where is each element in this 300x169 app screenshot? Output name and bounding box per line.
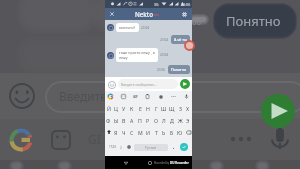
staticText: Н	[146, 105, 150, 112]
staticText: Э	[186, 117, 190, 124]
button[interactable]: Change language	[125, 140, 133, 154]
staticText: Т	[155, 129, 158, 136]
staticText: конечно?	[119, 25, 136, 30]
staticText: 23:04	[141, 26, 150, 30]
button[interactable]: Backspace	[184, 126, 192, 138]
staticText: 23:04	[160, 53, 169, 57]
button[interactable]: Б	[168, 126, 176, 138]
button[interactable]: Х	[184, 102, 192, 114]
button[interactable]: Stickers	[120, 93, 127, 100]
button[interactable]: У	[120, 102, 128, 114]
button[interactable]: ?123	[107, 140, 117, 154]
button[interactable]: Ч	[120, 126, 128, 138]
button[interactable]: Т	[152, 126, 160, 138]
button[interactable]: Ф	[105, 114, 112, 126]
button[interactable]: Ц	[112, 102, 120, 114]
button[interactable]: П	[136, 114, 144, 126]
staticText: М	[138, 129, 143, 136]
staticText: П	[138, 117, 142, 124]
staticText: Л	[162, 117, 166, 124]
button[interactable]: Comma	[117, 140, 125, 154]
button[interactable]: И	[144, 126, 152, 138]
button[interactable]: Emoji	[107, 80, 116, 89]
staticText: Р	[146, 117, 150, 124]
button[interactable]: Enter	[180, 143, 188, 151]
button[interactable]: Введите сообщение...	[118, 79, 178, 89]
button[interactable]: Щ	[168, 102, 176, 114]
button[interactable]: З	[176, 102, 184, 114]
staticText: тоже просто лежу , я	[119, 50, 155, 55]
staticText: В	[122, 117, 126, 124]
staticText: Е	[139, 105, 142, 112]
staticText: Х	[186, 105, 190, 112]
staticText: Русский	[145, 146, 157, 150]
staticText: Г	[155, 105, 158, 112]
button[interactable]: Ь	[160, 126, 168, 138]
staticText: Ц	[114, 105, 118, 112]
staticText: Щ	[169, 105, 175, 112]
staticText: К	[130, 105, 134, 112]
button[interactable]: О	[152, 114, 160, 126]
button[interactable]: Back	[121, 156, 130, 169]
button[interactable]: Э	[184, 114, 192, 126]
staticText: А чё ты	[174, 37, 187, 42]
staticText: У	[122, 105, 126, 112]
button[interactable]: More options	[170, 93, 177, 100]
staticText: Введите сообщение...	[121, 82, 157, 87]
button[interactable]: Ы	[112, 114, 120, 126]
button[interactable]: Send	[180, 79, 190, 89]
button[interactable]: Й	[105, 102, 112, 114]
button[interactable]: Settings	[177, 8, 192, 20]
button[interactable]: Р	[144, 114, 152, 126]
staticText: 3G	[154, 2, 159, 7]
button[interactable]: Ю	[176, 126, 184, 138]
staticText: 23:06	[157, 68, 166, 72]
button[interactable]: А	[128, 114, 136, 126]
staticText: DU Recorder	[170, 161, 189, 165]
staticText: Ч	[122, 129, 126, 136]
button[interactable]: Я	[112, 126, 120, 138]
button[interactable]: Period	[169, 140, 177, 154]
staticText: 06	[192, 16, 202, 27]
staticText: А	[130, 117, 134, 124]
staticText: Й	[107, 105, 111, 112]
staticText: Понятно	[226, 12, 281, 30]
button[interactable]: Space	[134, 144, 168, 151]
staticText: З	[179, 105, 182, 112]
staticText: Введите	[59, 88, 107, 104]
button[interactable]: Д	[168, 114, 176, 126]
button[interactable]: Н	[144, 102, 152, 114]
staticText: 23:04	[160, 38, 169, 42]
button[interactable]: К	[128, 102, 136, 114]
button[interactable]: Г	[152, 102, 160, 114]
staticText: GIF	[133, 95, 138, 99]
button[interactable]: М	[136, 126, 144, 138]
button[interactable]: Е	[136, 102, 144, 114]
button[interactable]: Shift	[105, 126, 112, 138]
button[interactable]: Voice input	[183, 93, 190, 100]
staticText: Ж	[178, 117, 183, 124]
staticText: GI	[88, 131, 101, 147]
staticText: Ш	[161, 105, 167, 112]
staticText: О	[154, 117, 158, 124]
button[interactable]: Google search	[107, 93, 114, 100]
staticText: ?123	[109, 145, 116, 149]
button[interactable]: Keyboard settings	[157, 93, 164, 100]
staticText: Д	[170, 117, 174, 124]
staticText: лежу	[119, 55, 128, 60]
button[interactable]: Home	[145, 156, 154, 169]
button[interactable]: Ш	[160, 102, 168, 114]
staticText: Nekto	[135, 10, 153, 18]
button[interactable]: Л	[160, 114, 168, 126]
button[interactable]: Ж	[176, 114, 184, 126]
button[interactable]: С	[128, 126, 136, 138]
staticText: И	[146, 129, 150, 136]
button[interactable]: В	[120, 114, 128, 126]
button[interactable]: Clipboard	[144, 93, 151, 100]
staticText: 23:06	[181, 2, 191, 7]
button[interactable]: Close chat	[105, 8, 119, 20]
staticText: Ы	[114, 117, 119, 124]
staticText: Recorded by	[154, 161, 170, 165]
staticText: Ь	[162, 129, 166, 136]
staticText: .me	[153, 12, 160, 17]
